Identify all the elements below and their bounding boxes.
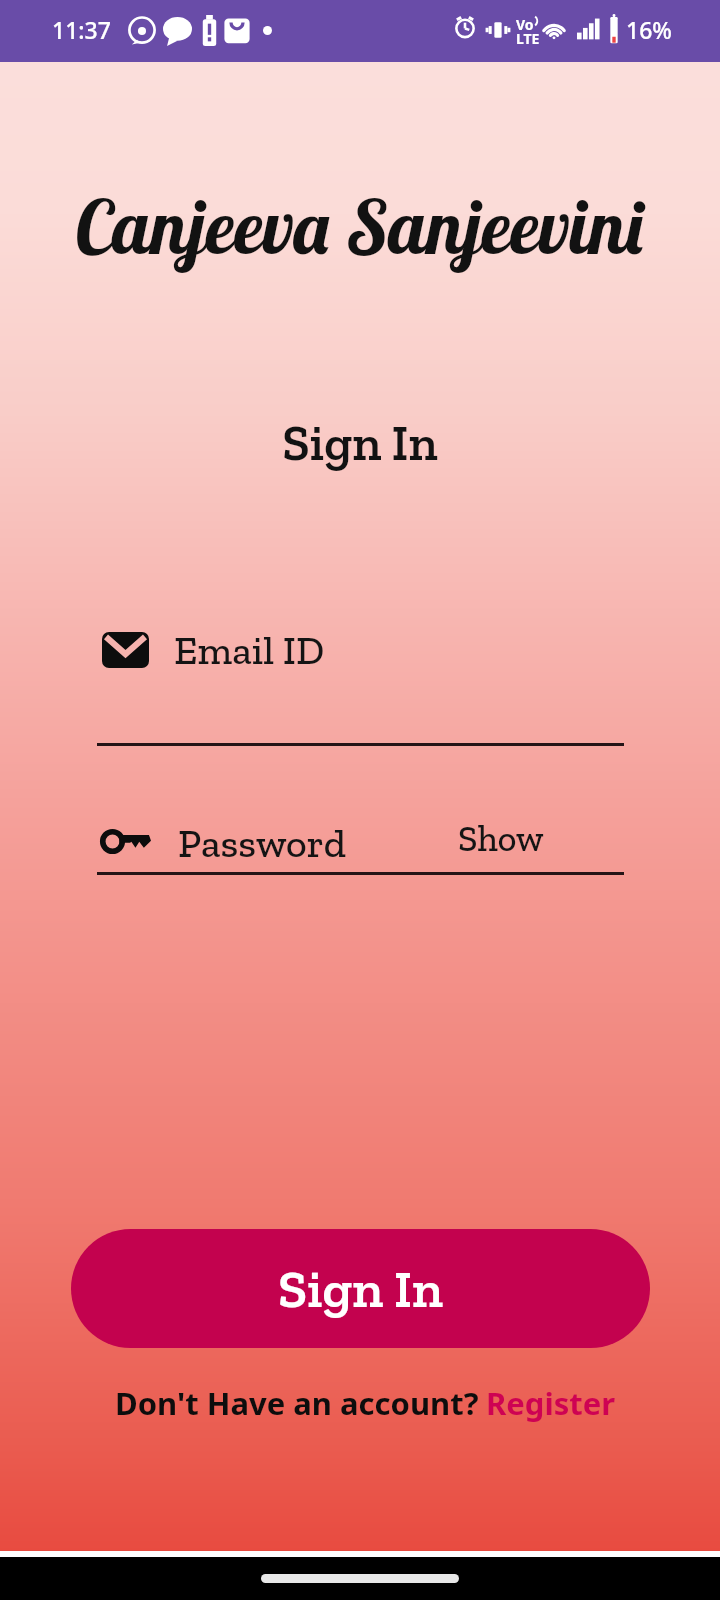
button[interactable]: Show xyxy=(451,816,551,860)
staticText: Email ID xyxy=(174,626,325,674)
staticText: Sign In xyxy=(0,413,720,473)
button[interactable]: Sign In xyxy=(71,1229,650,1348)
button[interactable]: Register xyxy=(486,1382,616,1424)
staticText: Canjeeva Sanjeevini xyxy=(0,180,720,273)
staticText: Password xyxy=(178,819,346,867)
staticText: 11:37 xyxy=(52,14,111,45)
staticText: Show xyxy=(458,817,544,860)
staticText: Vo xyxy=(516,15,534,34)
staticText: 16% xyxy=(626,14,672,45)
staticText: Sign In xyxy=(278,1257,444,1321)
staticText: Don't Have an account? xyxy=(115,1382,479,1424)
button[interactable]: Email ID field xyxy=(97,622,624,749)
button[interactable]: Password field xyxy=(97,815,624,875)
staticText: LTE xyxy=(516,29,540,48)
